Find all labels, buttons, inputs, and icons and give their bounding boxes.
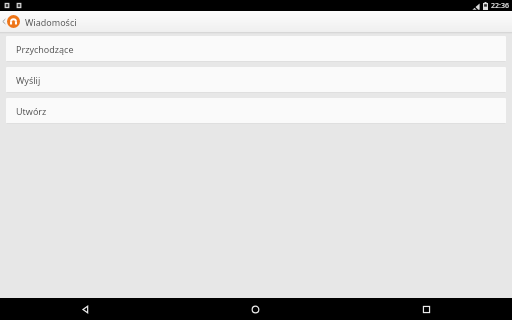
button[interactable]: Przychodzące — [6, 36, 506, 62]
staticText: Przychodzące — [16, 43, 74, 55]
button[interactable]: Recent apps — [341, 298, 512, 320]
staticText: 22:36 — [491, 1, 509, 11]
button[interactable]: Back — [0, 298, 170, 320]
staticText: Utwórz — [16, 105, 47, 117]
button[interactable]: Utwórz — [6, 98, 506, 124]
button[interactable]: Wyślij — [6, 67, 506, 93]
button[interactable]: Wiadomości, up — [1, 15, 81, 28]
button[interactable]: Home — [170, 298, 341, 320]
staticText: Wyślij — [16, 74, 41, 86]
staticText: Wiadomości — [25, 16, 77, 28]
